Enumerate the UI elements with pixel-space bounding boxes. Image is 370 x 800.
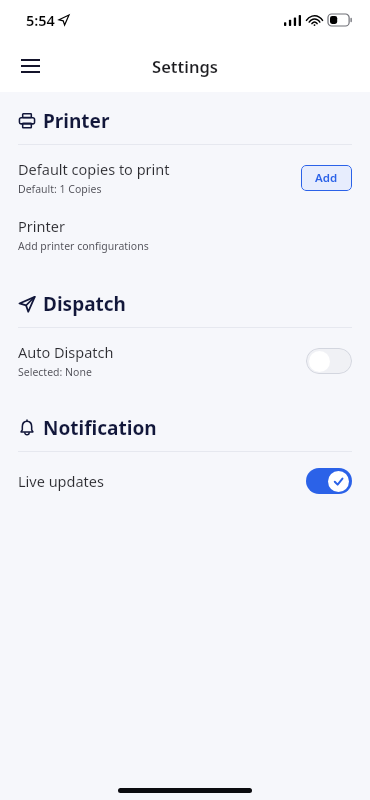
staticText: Default copies to print xyxy=(18,159,170,179)
staticText: Default: 1 Copies xyxy=(18,182,102,196)
staticText: 5:54 xyxy=(26,10,55,30)
staticText: Printer xyxy=(18,216,65,236)
staticText: Selected: None xyxy=(18,365,92,379)
button[interactable]: Live updates toggle xyxy=(306,468,352,494)
staticText: Dispatch xyxy=(43,291,126,317)
staticText: Printer xyxy=(43,108,110,134)
staticText: Add printer configurations xyxy=(18,239,149,253)
staticText: Add xyxy=(315,170,338,186)
button[interactable]: Add xyxy=(301,165,352,191)
staticText: Notification xyxy=(43,415,157,441)
button[interactable]: Auto Dispatch toggle xyxy=(306,348,352,374)
staticText: Live updates xyxy=(18,471,104,491)
staticText: Auto Dispatch xyxy=(18,342,114,362)
button[interactable]: Printer xyxy=(0,206,370,265)
button[interactable]: Default copies to print xyxy=(0,145,370,206)
button[interactable]: Live updates xyxy=(0,452,370,510)
button[interactable]: Auto Dispatch xyxy=(0,328,370,391)
button[interactable]: Open navigation menu xyxy=(8,44,52,88)
staticText: Settings xyxy=(152,55,218,77)
